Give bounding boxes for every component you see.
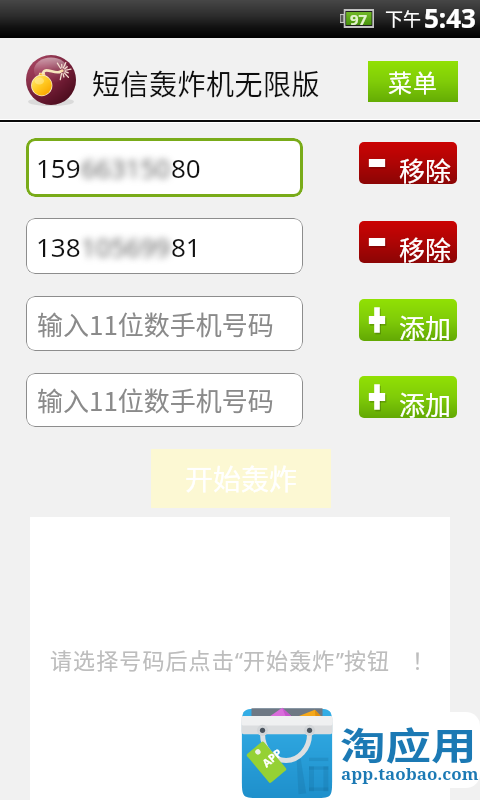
button[interactable]: 添加 <box>359 376 457 418</box>
button[interactable]: 开始轰炸 <box>151 449 331 508</box>
staticText: 下午 <box>385 5 421 31</box>
button[interactable]: 输入11位数手机号码 <box>26 296 303 351</box>
staticText: 添加 <box>399 385 452 418</box>
staticText: ” <box>336 645 344 675</box>
button[interactable]: 159 <box>26 138 303 197</box>
staticText: 移除 <box>399 151 452 184</box>
staticText: 81 <box>171 229 201 264</box>
staticText: 开始轰炸 <box>185 458 298 499</box>
staticText: APP <box>259 745 285 770</box>
staticText: 输入11位数手机号码 <box>37 305 274 343</box>
staticText: 138 <box>36 229 81 264</box>
staticText: 5:43 <box>424 0 476 35</box>
staticText: 移除 <box>399 230 452 263</box>
button[interactable]: 移除 <box>359 142 457 184</box>
staticText: 159 <box>36 150 81 185</box>
staticText: 80 <box>171 150 201 185</box>
staticText: 663150 <box>81 150 171 185</box>
button[interactable]: 输入11位数手机号码 <box>26 373 303 427</box>
button[interactable]: 添加 <box>359 299 457 341</box>
button[interactable]: 移除 <box>359 221 457 263</box>
button[interactable]: 菜单 <box>368 61 458 102</box>
staticText: ！ <box>412 643 436 675</box>
staticText: app.taobao.com <box>341 762 479 785</box>
staticText: 添加 <box>399 308 452 341</box>
staticText: 开始轰炸 <box>243 643 336 675</box>
staticText: 请选择号码后点击 <box>50 643 235 675</box>
button[interactable]: 138 <box>26 218 303 274</box>
staticText: 淘应用 <box>340 717 476 771</box>
staticText: “ <box>235 645 243 675</box>
staticText: 97 <box>350 9 368 28</box>
staticText: 105699 <box>81 229 171 264</box>
staticText: 按钮 <box>344 643 391 675</box>
staticText: 菜单 <box>388 64 438 99</box>
staticText: 短信轰炸机无限版 <box>92 63 321 104</box>
staticText: 输入11位数手机号码 <box>37 381 274 419</box>
